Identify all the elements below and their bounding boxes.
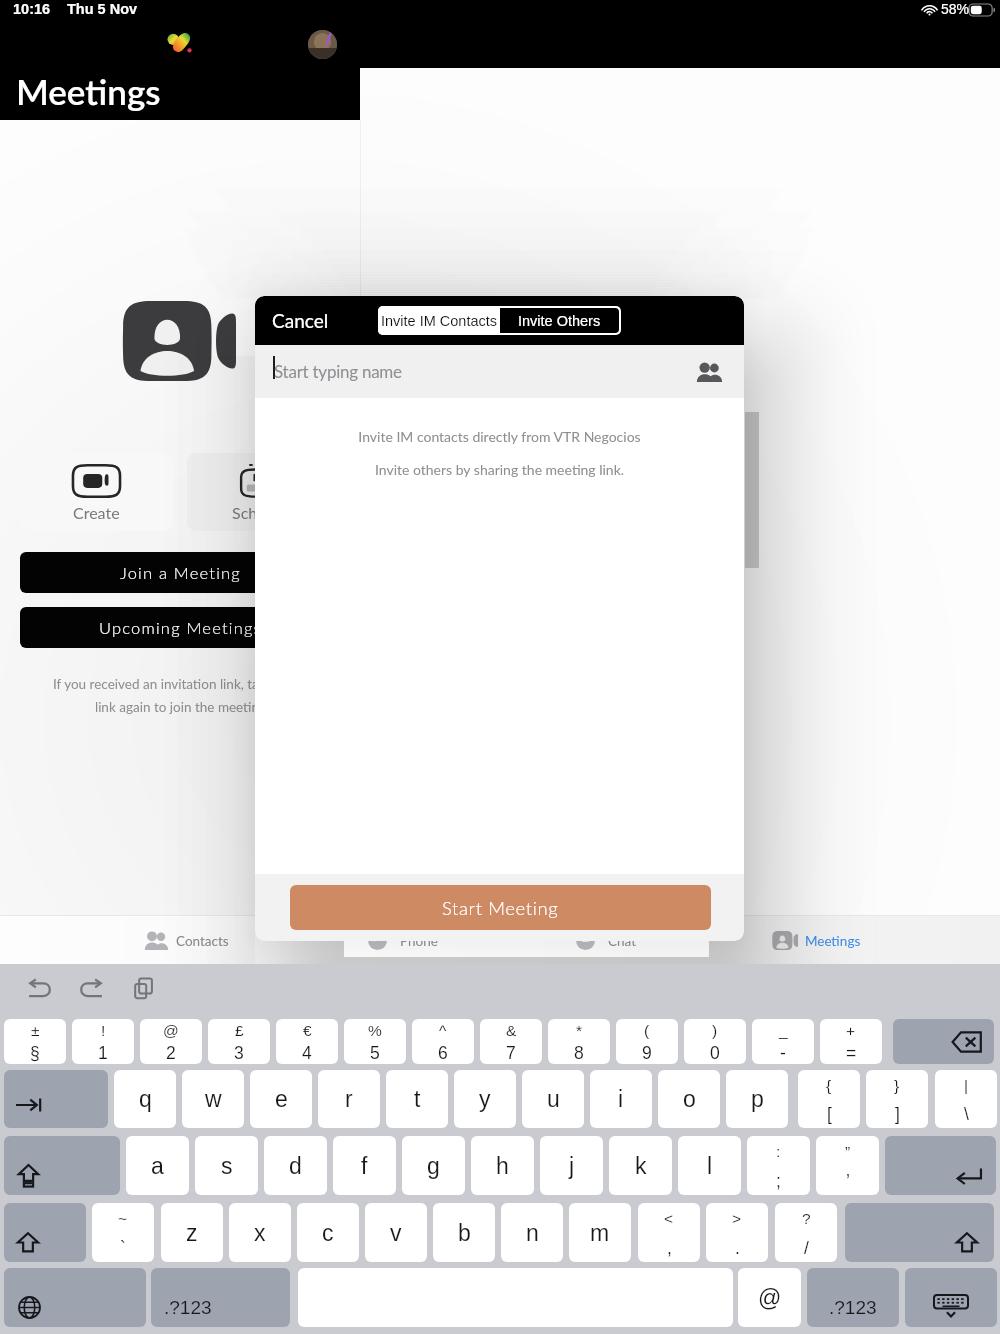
button[interactable]: & bbox=[480, 1019, 542, 1064]
button[interactable]: £ bbox=[208, 1019, 270, 1064]
button[interactable]: : bbox=[747, 1136, 810, 1195]
button[interactable]: p bbox=[726, 1070, 788, 1128]
staticText: > bbox=[732, 1210, 742, 1227]
button[interactable]: Tab bbox=[4, 1070, 108, 1128]
button[interactable]: .?123 bbox=[807, 1268, 899, 1327]
button[interactable]: i bbox=[590, 1070, 652, 1128]
button[interactable]: h bbox=[471, 1136, 534, 1195]
button[interactable]: Next keyboard bbox=[4, 1268, 146, 1327]
button[interactable]: v bbox=[365, 1203, 427, 1262]
staticText: Invite others by sharing the meeting lin… bbox=[255, 461, 744, 478]
button[interactable]: Start Meeting bbox=[290, 885, 711, 930]
staticText: l bbox=[707, 1153, 713, 1179]
button[interactable]: Contacts bbox=[144, 928, 229, 953]
button[interactable]: ” bbox=[816, 1136, 879, 1195]
button[interactable]: > bbox=[706, 1203, 768, 1262]
button[interactable]: l bbox=[678, 1136, 741, 1195]
button[interactable]: .?123 bbox=[151, 1268, 290, 1327]
button[interactable]: Caps lock bbox=[4, 1136, 120, 1195]
button[interactable]: Invite IM Contacts bbox=[378, 306, 500, 335]
staticText: r bbox=[345, 1086, 353, 1112]
button[interactable]: ( bbox=[616, 1019, 678, 1064]
button[interactable]: f bbox=[333, 1136, 396, 1195]
button[interactable]: } bbox=[866, 1070, 928, 1128]
staticText: 7 bbox=[506, 1043, 516, 1063]
button[interactable]: u bbox=[522, 1070, 584, 1128]
button[interactable]: _ bbox=[752, 1019, 814, 1064]
button[interactable]: * bbox=[548, 1019, 610, 1064]
button[interactable]: z bbox=[161, 1203, 223, 1262]
button[interactable]: Shift bbox=[4, 1203, 86, 1262]
button[interactable]: m bbox=[569, 1203, 631, 1262]
button[interactable]: ! bbox=[72, 1019, 134, 1064]
staticText: ^ bbox=[439, 1022, 447, 1039]
button[interactable]: Create bbox=[20, 453, 173, 531]
button[interactable]: @ bbox=[738, 1268, 801, 1327]
button[interactable]: j bbox=[540, 1136, 603, 1195]
button[interactable]: Undo bbox=[26, 978, 52, 1000]
staticText: o bbox=[683, 1086, 696, 1112]
button[interactable]: a bbox=[126, 1136, 189, 1195]
button[interactable]: Hide keyboard bbox=[905, 1268, 997, 1327]
staticText: y bbox=[479, 1086, 491, 1112]
button[interactable]: k bbox=[609, 1136, 672, 1195]
button[interactable]: { bbox=[798, 1070, 860, 1128]
button[interactable]: Redo bbox=[79, 978, 105, 1000]
staticText: = bbox=[846, 1043, 857, 1063]
button[interactable]: App switcher bbox=[167, 32, 192, 55]
staticText: .?123 bbox=[164, 1297, 212, 1318]
button[interactable]: w bbox=[182, 1070, 244, 1128]
staticText: k bbox=[635, 1153, 647, 1179]
button[interactable]: o bbox=[658, 1070, 720, 1128]
button[interactable]: ? bbox=[775, 1203, 837, 1262]
button[interactable]: t bbox=[386, 1070, 448, 1128]
button[interactable]: Return bbox=[885, 1136, 996, 1195]
button[interactable]: q bbox=[114, 1070, 176, 1128]
button[interactable]: ^ bbox=[412, 1019, 474, 1064]
button[interactable]: y bbox=[454, 1070, 516, 1128]
staticText: q bbox=[139, 1086, 152, 1112]
button[interactable]: ± bbox=[4, 1019, 66, 1064]
button[interactable]: @ bbox=[140, 1019, 202, 1064]
staticText: ± bbox=[31, 1022, 40, 1039]
button[interactable]: Cancel bbox=[255, 296, 355, 345]
button[interactable]: Profile bbox=[308, 30, 337, 59]
staticText: Start typing name bbox=[274, 361, 402, 381]
button[interactable]: g bbox=[402, 1136, 465, 1195]
button[interactable]: Backspace bbox=[893, 1019, 994, 1064]
button[interactable]: b bbox=[433, 1203, 495, 1262]
button[interactable]: Invite Others bbox=[500, 308, 619, 333]
staticText: / bbox=[804, 1238, 809, 1258]
button[interactable]: + bbox=[820, 1019, 882, 1064]
button[interactable]: Schedule bbox=[187, 453, 340, 531]
staticText: Create bbox=[73, 503, 120, 522]
button[interactable]: d bbox=[264, 1136, 327, 1195]
button[interactable]: n bbox=[501, 1203, 563, 1262]
button[interactable]: < bbox=[638, 1203, 700, 1262]
button[interactable]: | bbox=[935, 1070, 997, 1128]
button[interactable]: c bbox=[297, 1203, 359, 1262]
button[interactable]: Join a Meeting bbox=[20, 552, 341, 593]
button[interactable]: % bbox=[344, 1019, 406, 1064]
staticText: 2 bbox=[166, 1043, 176, 1063]
staticText: x bbox=[254, 1220, 266, 1246]
button[interactable]: ) bbox=[684, 1019, 746, 1064]
button[interactable]: Choose contacts bbox=[696, 362, 723, 382]
staticText: : bbox=[776, 1143, 781, 1160]
staticText: 4 bbox=[302, 1043, 312, 1063]
staticText: ) bbox=[712, 1022, 718, 1039]
button[interactable]: Meetings bbox=[773, 928, 861, 953]
button[interactable]: x bbox=[229, 1203, 291, 1262]
button[interactable]: Copy bbox=[133, 977, 155, 1000]
button[interactable]: Phone bbox=[368, 928, 438, 953]
staticText: t bbox=[414, 1086, 421, 1112]
button[interactable]: Chat bbox=[576, 928, 637, 953]
button[interactable]: Shift bbox=[845, 1203, 994, 1262]
button[interactable]: ~ bbox=[92, 1203, 154, 1262]
button[interactable]: s bbox=[195, 1136, 258, 1195]
button[interactable]: Upcoming Meetings bbox=[20, 607, 341, 648]
button[interactable]: e bbox=[250, 1070, 312, 1128]
button[interactable]: € bbox=[276, 1019, 338, 1064]
button[interactable]: r bbox=[318, 1070, 380, 1128]
